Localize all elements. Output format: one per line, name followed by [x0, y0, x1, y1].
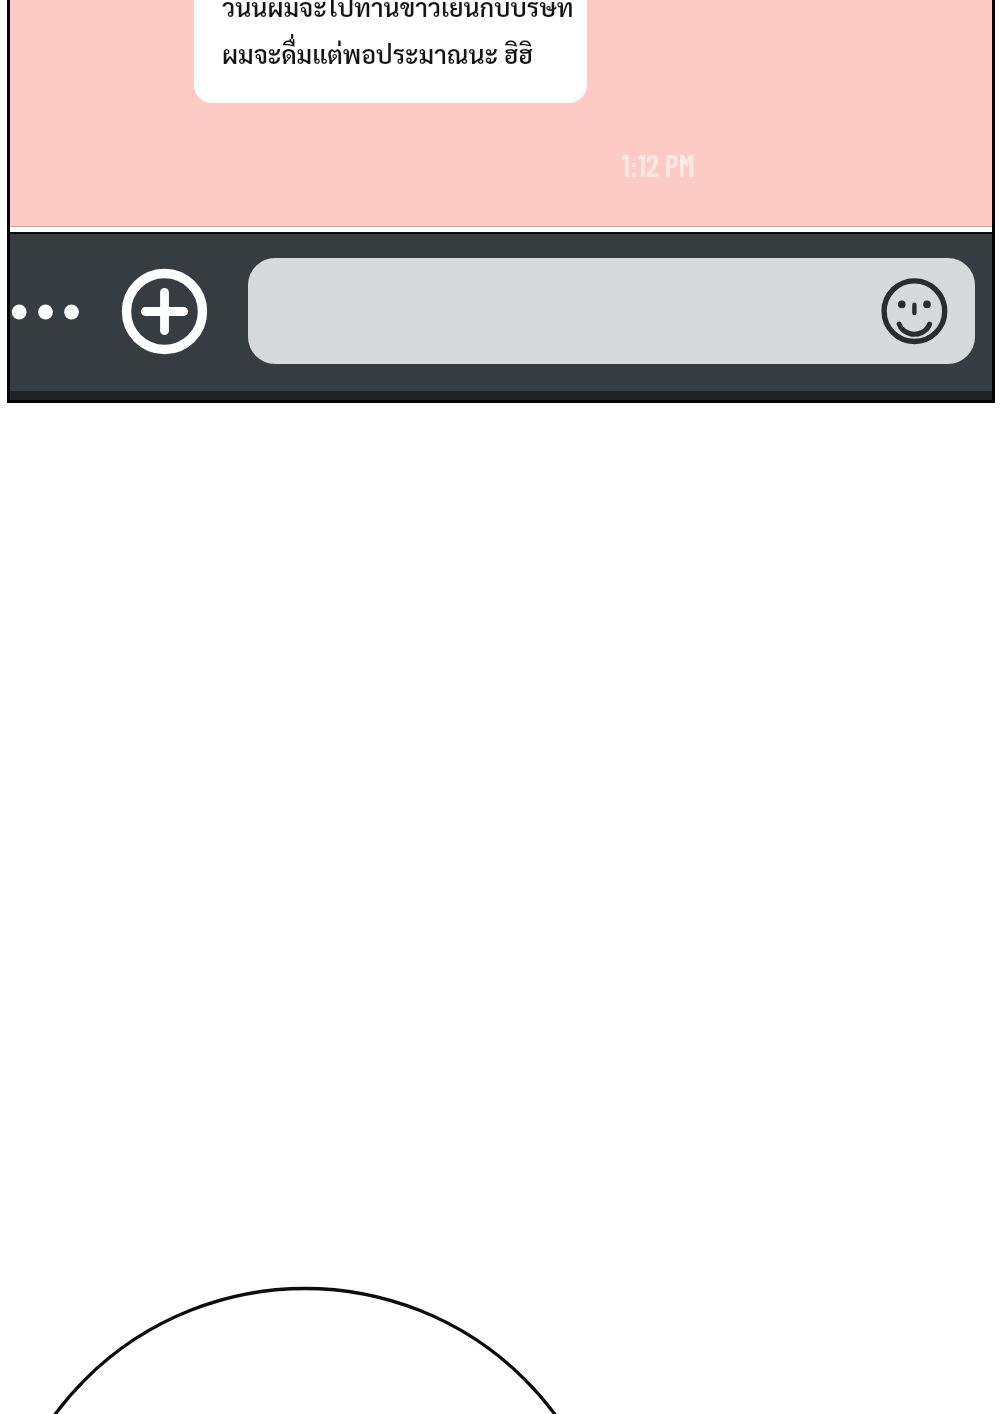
- button[interactable]: Message input field: [248, 258, 975, 364]
- button[interactable]: More options: [4, 289, 90, 335]
- button[interactable]: Add attachment: [118, 265, 211, 358]
- staticText: 1:12 PM: [622, 147, 695, 183]
- button[interactable]: Emoji: [878, 275, 951, 348]
- button[interactable]: Message bubble: [194, 0, 587, 103]
- staticText: วันนี้ผมจะไปทานข้าวเย็นกับบริษัท ผมจะดื่…: [222, 0, 574, 69]
